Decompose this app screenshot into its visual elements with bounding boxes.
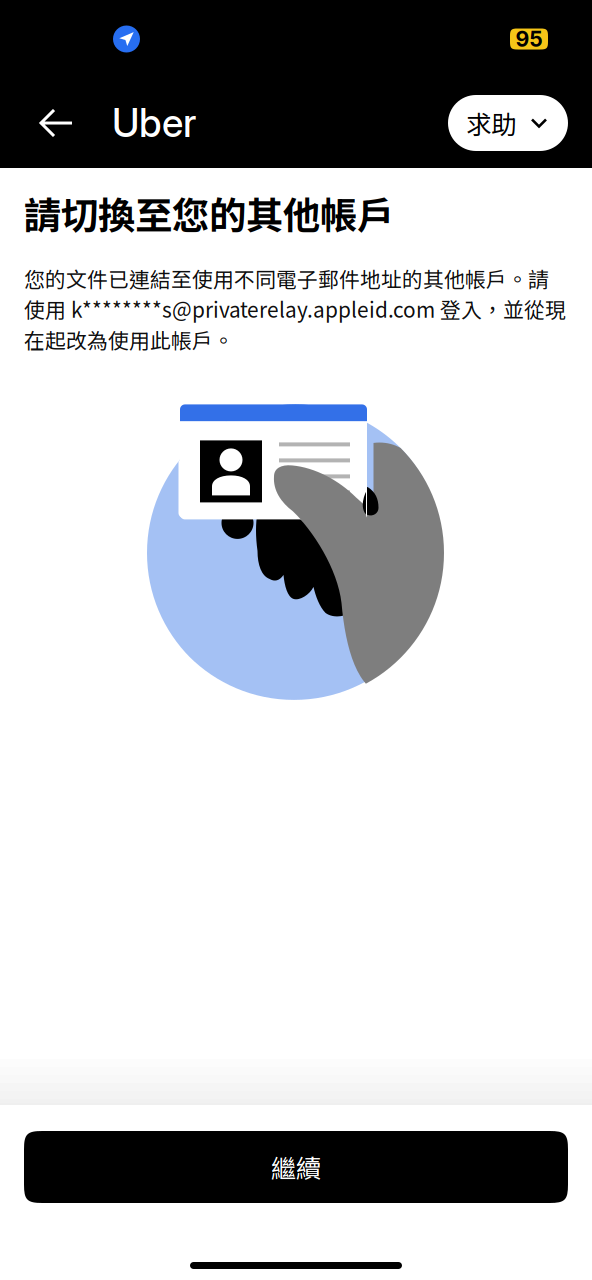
- button[interactable]: 繼續: [24, 1131, 568, 1203]
- button[interactable]: 求助: [448, 95, 568, 151]
- staticText: 您的文件已連結至使用不同電子郵件地址的其他帳戶。請使用 k********s@p…: [24, 263, 566, 354]
- staticText: 請切換至您的其他帳戶: [24, 186, 394, 240]
- staticText: Uber: [112, 100, 196, 146]
- button[interactable]: Back: [0, 78, 112, 168]
- staticText: 95: [515, 26, 542, 52]
- staticText: 繼續: [271, 1149, 321, 1185]
- staticText: 求助: [466, 105, 516, 141]
